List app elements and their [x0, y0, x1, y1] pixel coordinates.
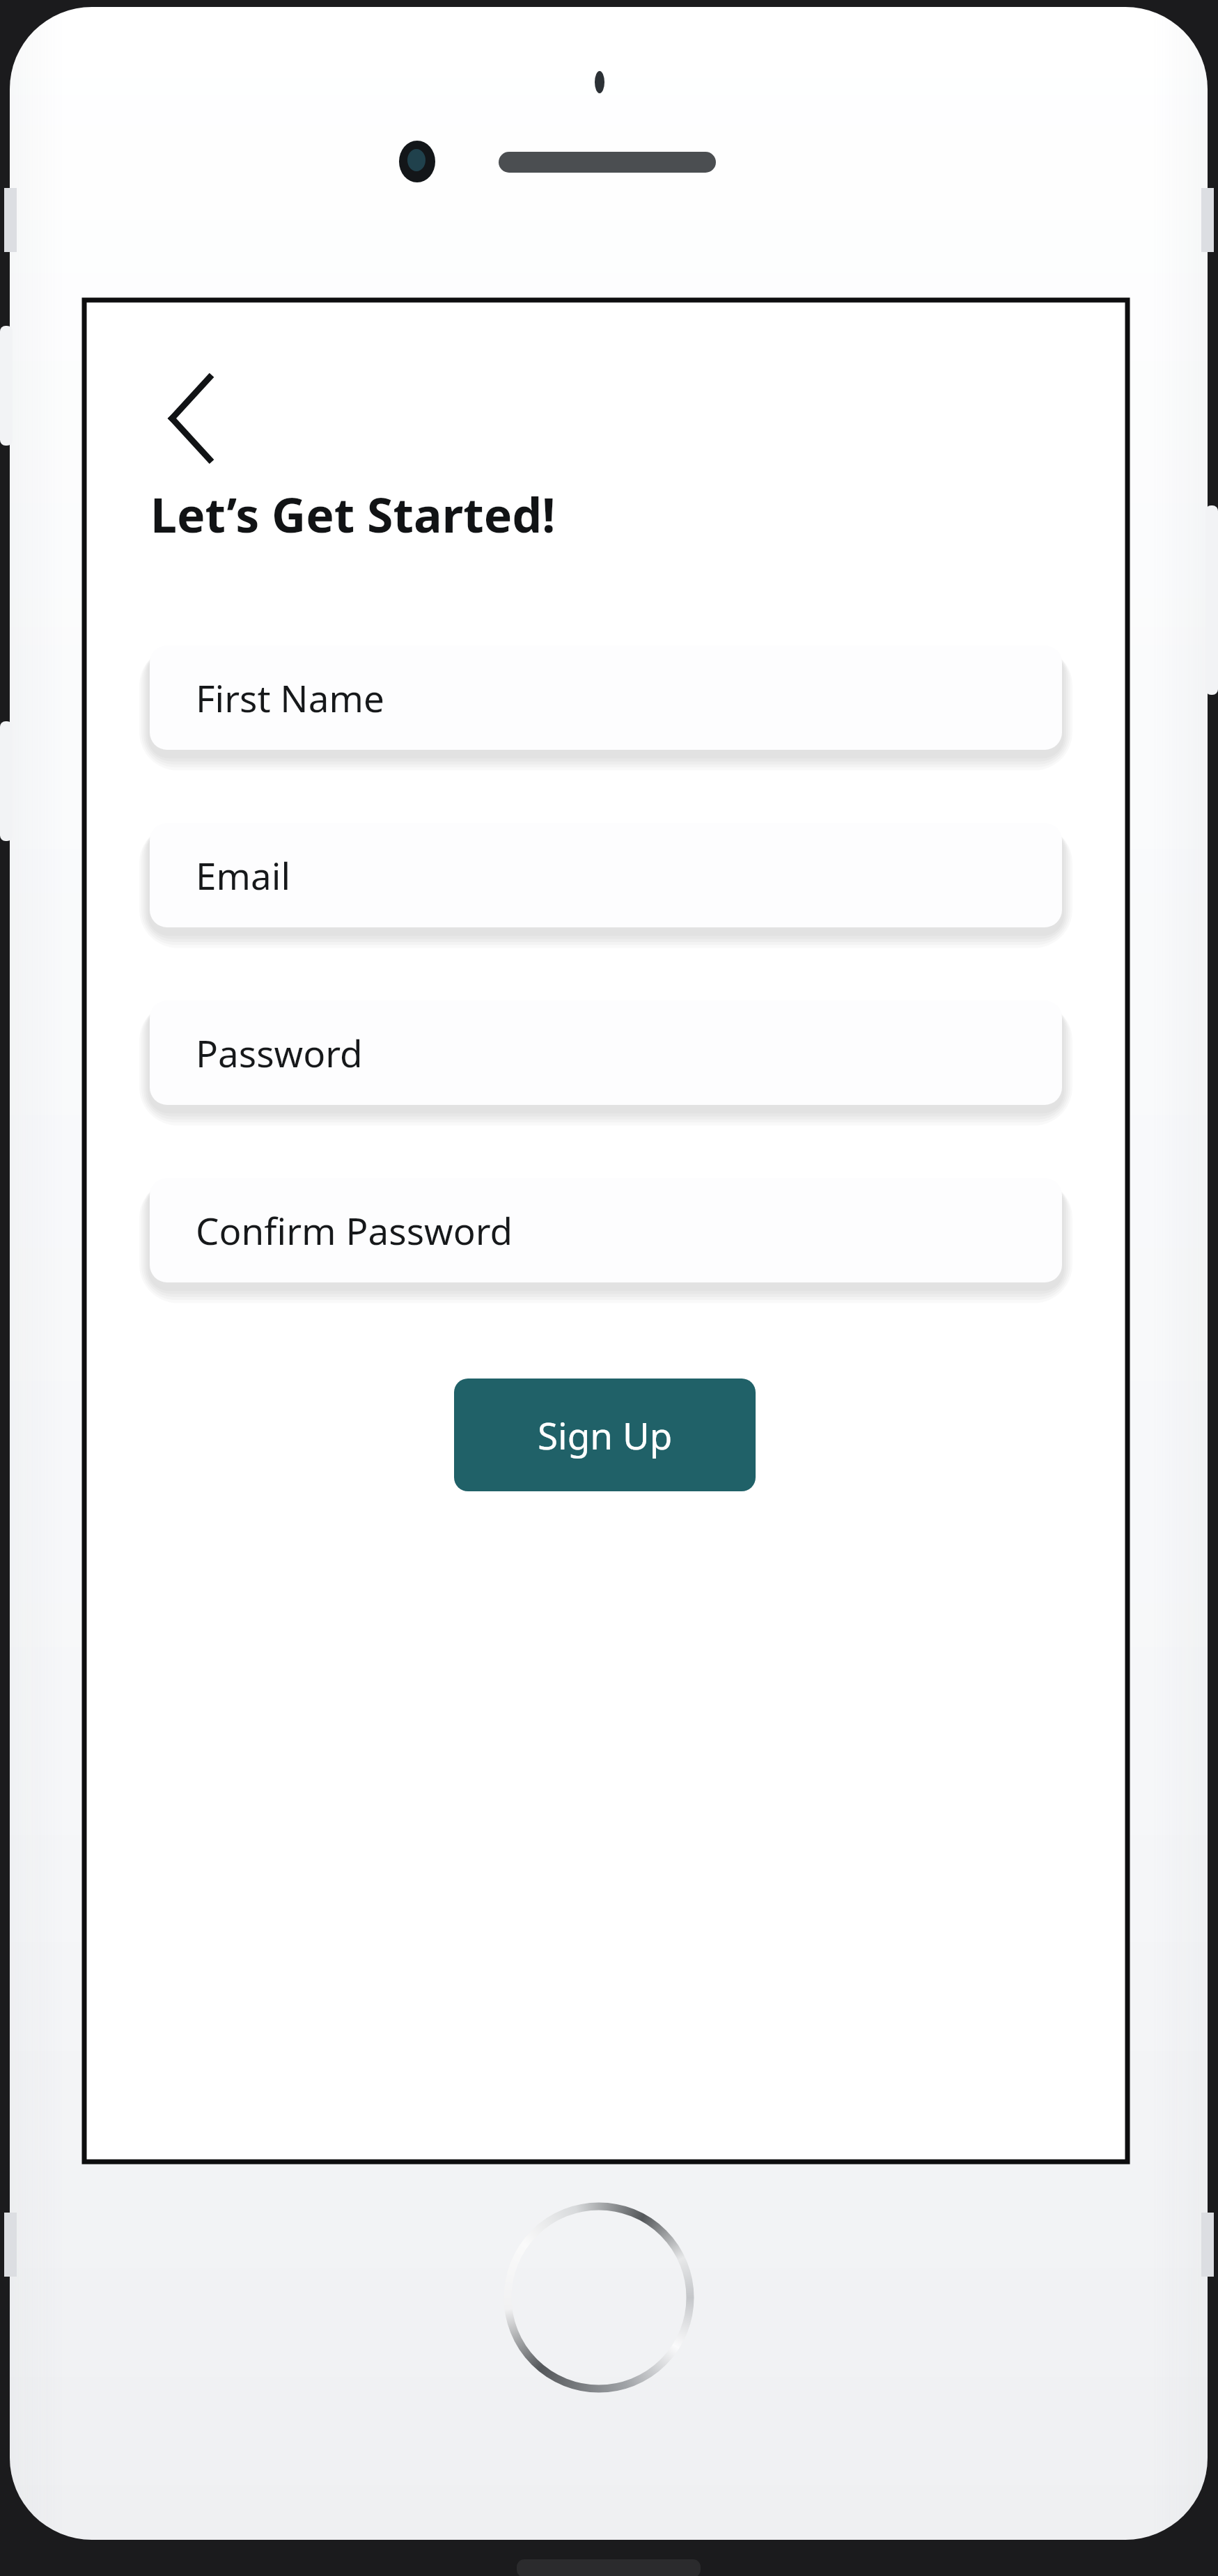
staticText: Confirm Password — [196, 1205, 513, 1255]
staticText: Password — [196, 1028, 363, 1078]
button[interactable]: Sign Up — [454, 1379, 756, 1491]
button[interactable]: Password — [150, 1000, 1062, 1105]
button[interactable]: Email — [150, 823, 1062, 927]
staticText: Sign Up — [538, 1410, 673, 1460]
staticText: First Name — [196, 673, 384, 723]
button[interactable]: First Name — [150, 645, 1062, 750]
staticText: Email — [196, 850, 291, 900]
button[interactable]: Confirm Password — [150, 1178, 1062, 1282]
button[interactable]: Home — [505, 2204, 693, 2392]
button[interactable]: Back — [130, 347, 252, 466]
staticText: Let’s Get Started! — [150, 482, 556, 547]
